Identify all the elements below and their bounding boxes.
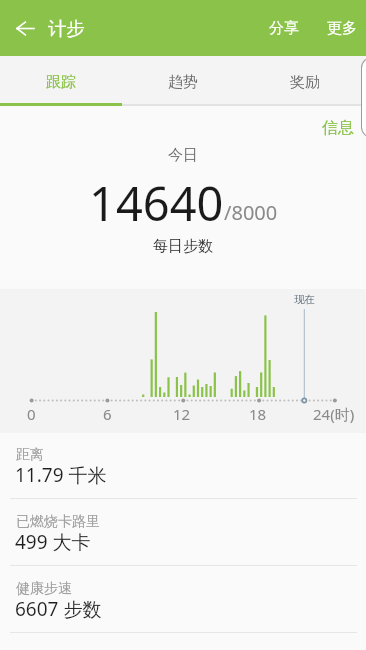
staticText: 趋势 (168, 73, 198, 92)
button[interactable]: 已燃烧卡路里 (0, 499, 366, 566)
staticText: /8000 (224, 199, 278, 226)
staticText: 现在 (294, 293, 315, 306)
staticText: 18 (249, 404, 267, 424)
button[interactable]: 奖励 (244, 56, 366, 106)
staticText: 跟踪 (46, 73, 76, 92)
staticText: 健康步速 (16, 580, 72, 598)
button[interactable]: 健康步速 (0, 566, 366, 633)
button[interactable]: 趋势 (122, 56, 244, 106)
staticText: 分享 (269, 19, 299, 38)
button[interactable]: 分享 (261, 0, 307, 56)
button[interactable]: 信息 (310, 114, 366, 142)
staticText: 信息 (322, 118, 354, 138)
staticText: 今日 (0, 146, 366, 165)
staticText: 每日步数 (0, 237, 366, 256)
staticText: 奖励 (290, 73, 320, 92)
staticText: 已燃烧卡路里 (16, 513, 100, 531)
staticText: 6 (103, 404, 112, 424)
button[interactable]: 跟踪 (0, 56, 122, 106)
staticText: 499 大卡 (15, 529, 91, 555)
staticText: 12 (173, 404, 191, 424)
staticText: 更多 (327, 19, 357, 38)
button[interactable]: Back (0, 0, 48, 56)
staticText: 14640 (89, 171, 224, 235)
staticText: 24(时) (313, 404, 355, 424)
staticText: 6607 步数 (15, 596, 102, 622)
staticText: 0 (27, 404, 36, 424)
staticText: 距离 (16, 446, 44, 464)
button[interactable]: 距离 (0, 432, 366, 499)
staticText: 计步 (48, 17, 85, 40)
staticText: 11.79 千米 (15, 462, 107, 488)
button[interactable]: 更多 (319, 0, 366, 56)
